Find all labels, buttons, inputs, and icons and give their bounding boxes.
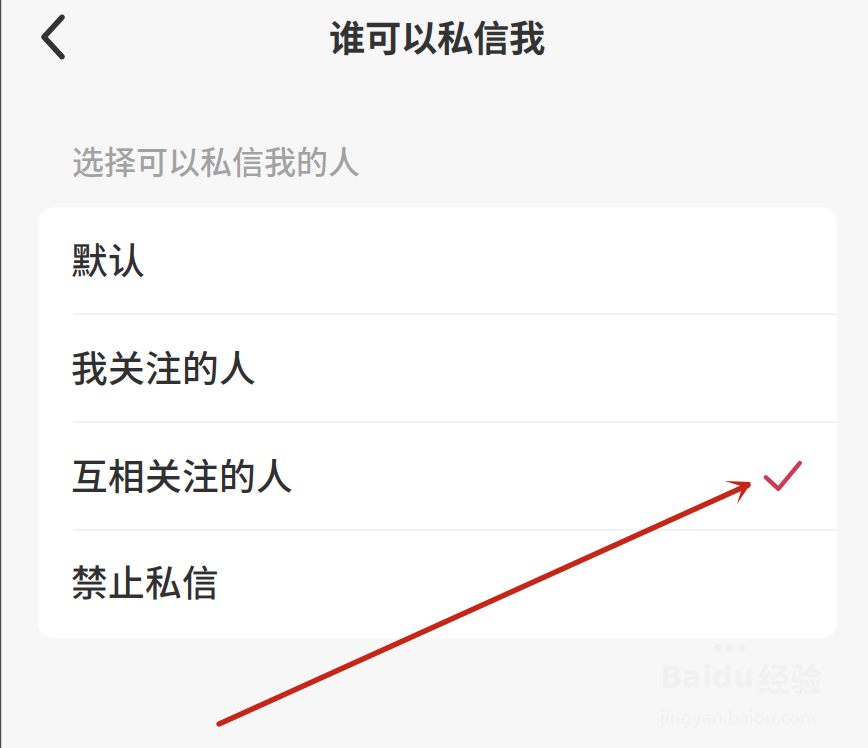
button[interactable]: 我关注的人 [38, 315, 837, 421]
button[interactable]: 互相关注的人 [38, 423, 837, 529]
button[interactable]: Back [0, 0, 85, 74]
button[interactable]: 禁止私信 [38, 531, 837, 638]
staticText: 默认 [71, 232, 145, 285]
button[interactable]: 默认 [38, 207, 837, 313]
staticText: 谁可以私信我 [329, 10, 545, 62]
staticText: 互相关注的人 [71, 447, 293, 500]
staticText: 我关注的人 [71, 340, 256, 393]
staticText: 选择可以私信我的人 [72, 137, 360, 183]
staticText: 禁止私信 [71, 554, 219, 607]
